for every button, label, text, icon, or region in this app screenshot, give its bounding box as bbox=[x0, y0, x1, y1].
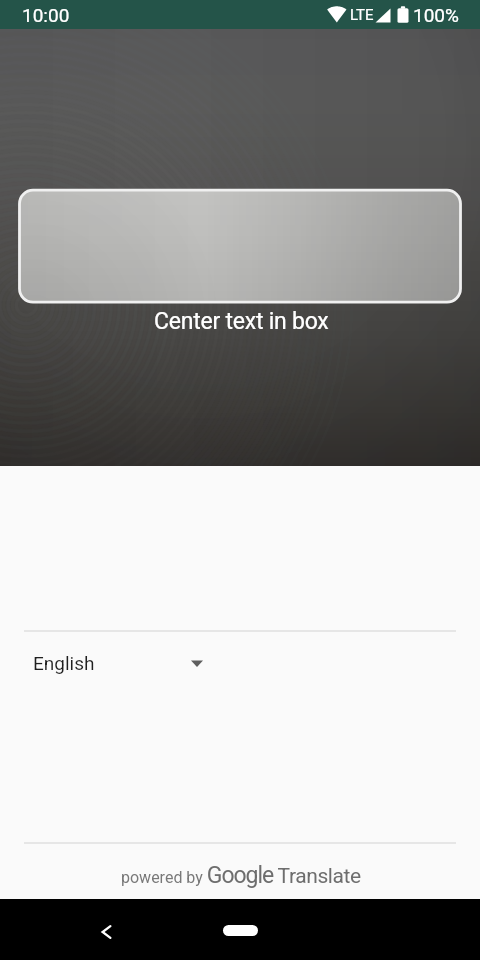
button[interactable]: English bbox=[0, 639, 480, 687]
staticText: 100% bbox=[413, 4, 459, 26]
button[interactable]: Home bbox=[205, 908, 275, 952]
staticText: Center text in box bbox=[154, 308, 329, 335]
staticText: LTE bbox=[350, 6, 374, 24]
button[interactable]: Back bbox=[84, 910, 128, 954]
staticText: powered by Google Translate bbox=[121, 862, 361, 889]
staticText: 10:00 bbox=[22, 4, 70, 26]
staticText: English bbox=[33, 652, 95, 674]
